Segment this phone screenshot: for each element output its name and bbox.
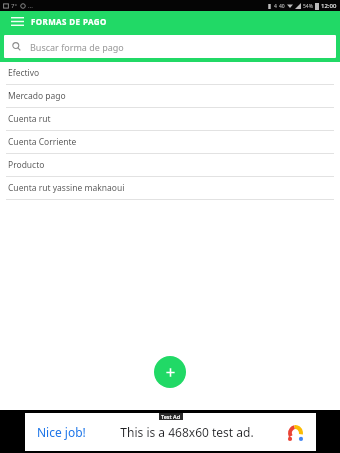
staticText: Cuenta rut <box>8 113 51 125</box>
button[interactable]: Producto <box>0 154 340 176</box>
button[interactable]: Advertisement <box>25 413 316 451</box>
button[interactable]: Cuenta rut <box>0 108 340 130</box>
staticText: Producto <box>8 159 45 171</box>
button[interactable]: Cuenta Corriente <box>0 131 340 153</box>
button[interactable]: Buscar forma de pago <box>4 35 336 58</box>
staticText: This is a 468x60 test ad. <box>120 424 254 440</box>
button[interactable]: Cuenta rut yassine maknaoui <box>0 177 340 199</box>
staticText: 4 <box>274 3 277 10</box>
staticText: Buscar forma de pago <box>30 41 124 53</box>
staticText: Mercado pago <box>8 90 66 102</box>
staticText: 54% <box>303 3 313 10</box>
button[interactable]: Open navigation menu <box>7 11 27 31</box>
staticText: Nice job! <box>37 424 86 440</box>
staticText: Test Ad <box>161 413 181 420</box>
staticText: FORMAS DE PAGO <box>31 16 107 27</box>
button[interactable]: Efectivo <box>0 62 340 84</box>
staticText: 7° <box>11 2 18 10</box>
staticText: ... <box>28 2 33 10</box>
staticText: 40 <box>279 3 285 10</box>
staticText: 12:00 <box>321 2 337 10</box>
staticText: Cuenta rut yassine maknaoui <box>8 182 125 194</box>
button[interactable]: Add payment method <box>154 356 186 388</box>
staticText: Efectivo <box>8 67 40 79</box>
button[interactable]: Mercado pago <box>0 85 340 107</box>
staticText: Cuenta Corriente <box>8 136 77 148</box>
